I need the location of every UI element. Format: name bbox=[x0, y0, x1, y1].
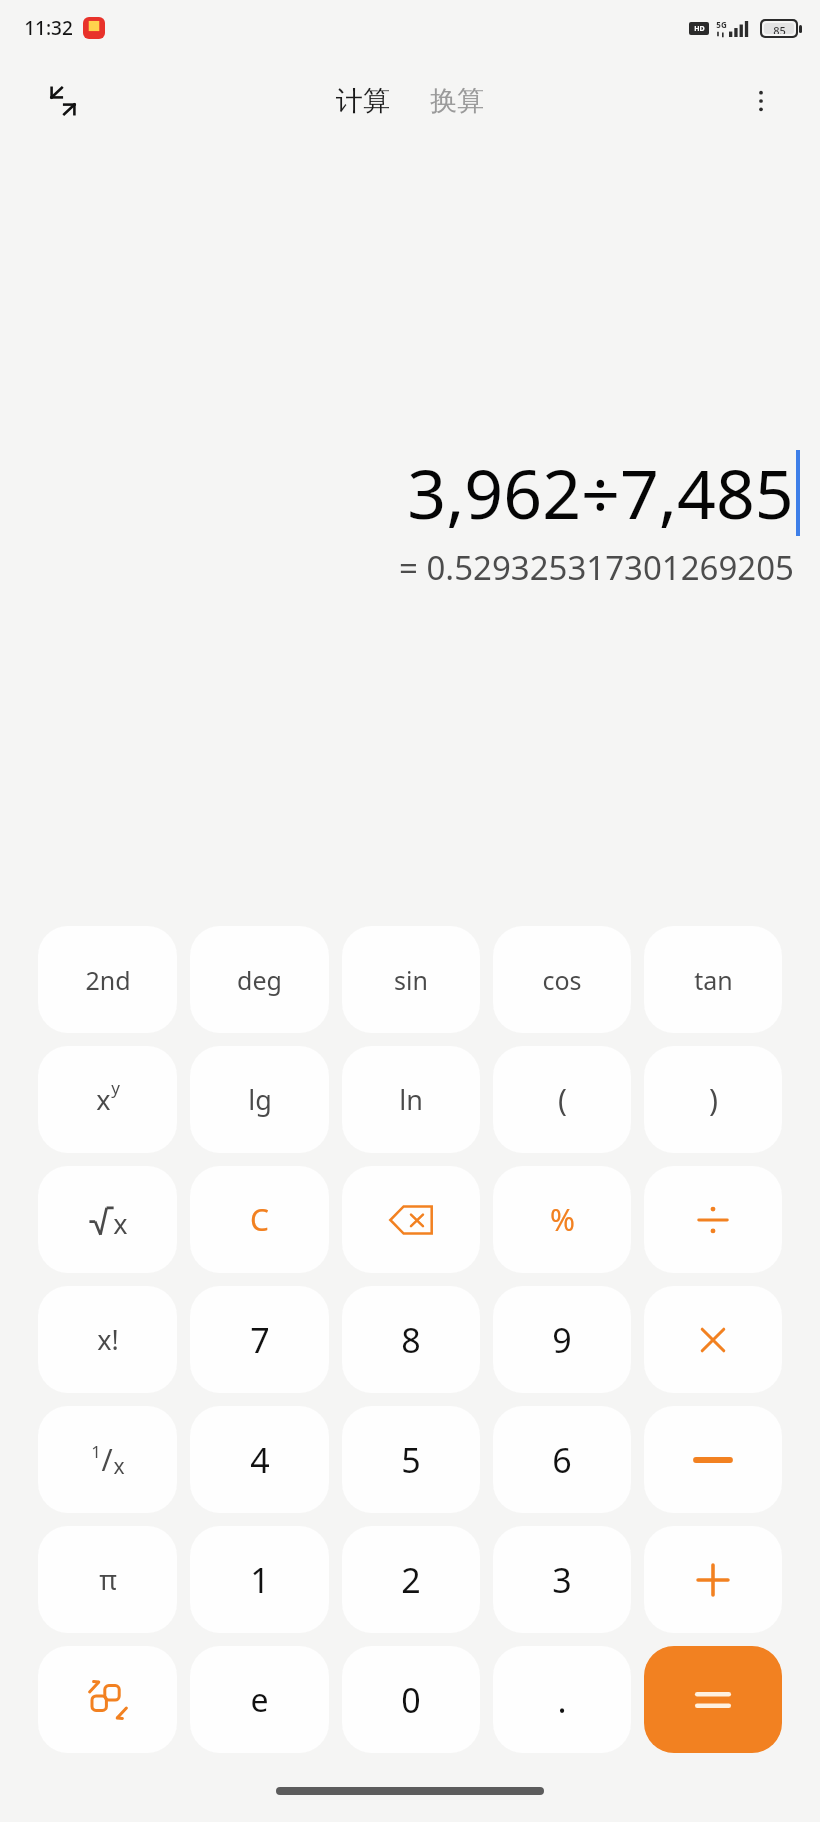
button[interactable]: Square root bbox=[38, 1166, 177, 1273]
staticText: deg bbox=[237, 963, 282, 997]
staticText: 5G bbox=[716, 19, 727, 30]
staticText: 11:32 bbox=[24, 15, 73, 41]
button[interactable]: ln bbox=[342, 1046, 480, 1153]
staticText: x bbox=[113, 1205, 128, 1242]
staticText: 1 bbox=[250, 1557, 270, 1603]
staticText: y bbox=[111, 1076, 120, 1099]
button[interactable]: 换算 bbox=[424, 78, 490, 124]
button[interactable]: 5 bbox=[342, 1406, 480, 1513]
staticText: e bbox=[250, 1678, 269, 1722]
button[interactable]: cos bbox=[493, 926, 631, 1033]
staticText: C bbox=[250, 1199, 269, 1240]
staticText: ln bbox=[399, 1081, 423, 1118]
button[interactable]: sin bbox=[342, 926, 480, 1033]
staticText: 换算 bbox=[430, 84, 484, 118]
button[interactable]: Convert bbox=[38, 1646, 177, 1753]
button[interactable]: 4 bbox=[190, 1406, 329, 1513]
button[interactable]: Subtract bbox=[644, 1406, 782, 1513]
button[interactable]: 1 bbox=[190, 1526, 329, 1633]
button[interactable]: Add bbox=[644, 1526, 782, 1633]
button[interactable]: e bbox=[190, 1646, 329, 1753]
staticText: 2nd bbox=[85, 963, 131, 997]
button[interactable]: 2 bbox=[342, 1526, 480, 1633]
button[interactable]: 6 bbox=[493, 1406, 631, 1513]
button[interactable]: Delete bbox=[342, 1166, 480, 1273]
staticText: 9 bbox=[552, 1317, 572, 1363]
staticText: HD bbox=[694, 24, 705, 34]
button[interactable]: tan bbox=[644, 926, 782, 1033]
button[interactable]: Power bbox=[38, 1046, 177, 1153]
button[interactable]: ) bbox=[644, 1046, 782, 1153]
staticText: 计算 bbox=[336, 84, 390, 118]
staticText: π bbox=[99, 1561, 117, 1598]
staticText: x! bbox=[97, 1321, 119, 1358]
staticText: lg bbox=[248, 1081, 272, 1118]
button[interactable]: π bbox=[38, 1526, 177, 1633]
button[interactable]: 3 bbox=[493, 1526, 631, 1633]
button[interactable]: C bbox=[190, 1166, 329, 1273]
button[interactable]: % bbox=[493, 1166, 631, 1273]
staticText: ( bbox=[558, 1079, 567, 1120]
staticText: ) bbox=[709, 1079, 718, 1120]
button[interactable]: deg bbox=[190, 926, 329, 1033]
button[interactable]: Equals bbox=[644, 1646, 782, 1753]
staticText: 5 bbox=[401, 1437, 421, 1483]
button[interactable]: 计算 bbox=[330, 78, 396, 124]
staticText: x bbox=[113, 1452, 125, 1481]
staticText: 8 bbox=[401, 1317, 421, 1363]
staticText: % bbox=[550, 1199, 575, 1240]
button[interactable]: 7 bbox=[190, 1286, 329, 1393]
staticText: . bbox=[557, 1677, 567, 1723]
staticText: cos bbox=[542, 963, 582, 997]
button[interactable]: Reciprocal bbox=[38, 1406, 177, 1513]
staticText: tan bbox=[694, 963, 733, 997]
staticText: 0 bbox=[401, 1677, 421, 1723]
staticText: sin bbox=[394, 963, 428, 997]
staticText: = 0.529325317301269205 bbox=[399, 545, 794, 590]
button[interactable]: Divide bbox=[644, 1166, 782, 1273]
staticText: 85 bbox=[773, 23, 786, 34]
staticText: 3,962÷7,485 bbox=[407, 446, 794, 539]
button[interactable]: 0 bbox=[342, 1646, 480, 1753]
button[interactable]: lg bbox=[190, 1046, 329, 1153]
button[interactable]: ( bbox=[493, 1046, 631, 1153]
staticText: 4 bbox=[250, 1437, 270, 1483]
button[interactable]: x! bbox=[38, 1286, 177, 1393]
button[interactable]: Collapse bbox=[36, 74, 90, 128]
button[interactable]: 2nd bbox=[38, 926, 177, 1033]
button[interactable]: 8 bbox=[342, 1286, 480, 1393]
button[interactable]: . bbox=[493, 1646, 631, 1753]
staticText: 2 bbox=[401, 1557, 421, 1603]
staticText: 3 bbox=[552, 1557, 572, 1603]
staticText: 6 bbox=[552, 1437, 572, 1483]
button[interactable]: More options bbox=[734, 74, 788, 128]
staticText: x bbox=[96, 1081, 111, 1118]
staticText: 1 bbox=[91, 1440, 101, 1463]
button[interactable]: 9 bbox=[493, 1286, 631, 1393]
staticText: 7 bbox=[250, 1317, 270, 1363]
button[interactable]: Multiply bbox=[644, 1286, 782, 1393]
staticText: / bbox=[101, 1439, 113, 1480]
